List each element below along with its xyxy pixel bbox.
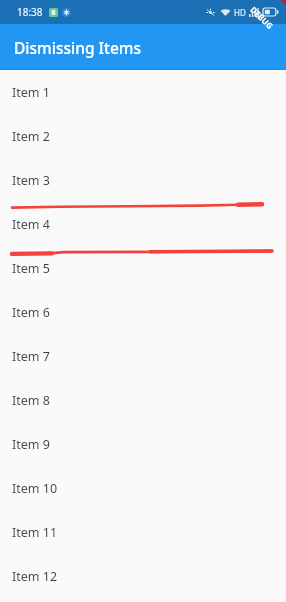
staticText: Item 6 — [12, 304, 50, 321]
button[interactable]: Item 1 — [0, 70, 286, 114]
button[interactable]: Item 8 — [0, 378, 286, 422]
button[interactable]: Item 5 — [0, 246, 286, 290]
staticText: 18:38 — [17, 5, 43, 19]
staticText: Item 11 — [12, 524, 58, 541]
button[interactable]: Item 7 — [0, 334, 286, 378]
staticText: Dismissing Items — [14, 37, 142, 58]
other: Debug banner — [0, 0, 286, 602]
button[interactable]: Item 12 — [0, 554, 286, 598]
staticText: Item 12 — [12, 568, 58, 585]
button[interactable]: Item 6 — [0, 290, 286, 334]
staticText: Item 10 — [12, 480, 58, 497]
button[interactable]: Item 3 — [0, 158, 286, 202]
staticText: Item 2 — [12, 128, 50, 145]
staticText: Item 9 — [12, 436, 50, 453]
button[interactable]: Item 2 — [0, 114, 286, 158]
staticText: Item 3 — [12, 172, 50, 189]
button[interactable]: Item 4 — [0, 202, 286, 246]
staticText: Item 5 — [12, 260, 50, 277]
staticText: HD — [234, 7, 246, 18]
staticText: Item 7 — [12, 348, 50, 365]
staticText: Item 4 — [12, 216, 50, 233]
button[interactable]: Item 10 — [0, 466, 286, 510]
staticText: DEBUG — [243, 0, 281, 37]
button[interactable]: Item 11 — [0, 510, 286, 554]
staticText: Item 8 — [12, 392, 50, 409]
staticText: Item 1 — [12, 84, 50, 101]
button[interactable]: Item 9 — [0, 422, 286, 466]
